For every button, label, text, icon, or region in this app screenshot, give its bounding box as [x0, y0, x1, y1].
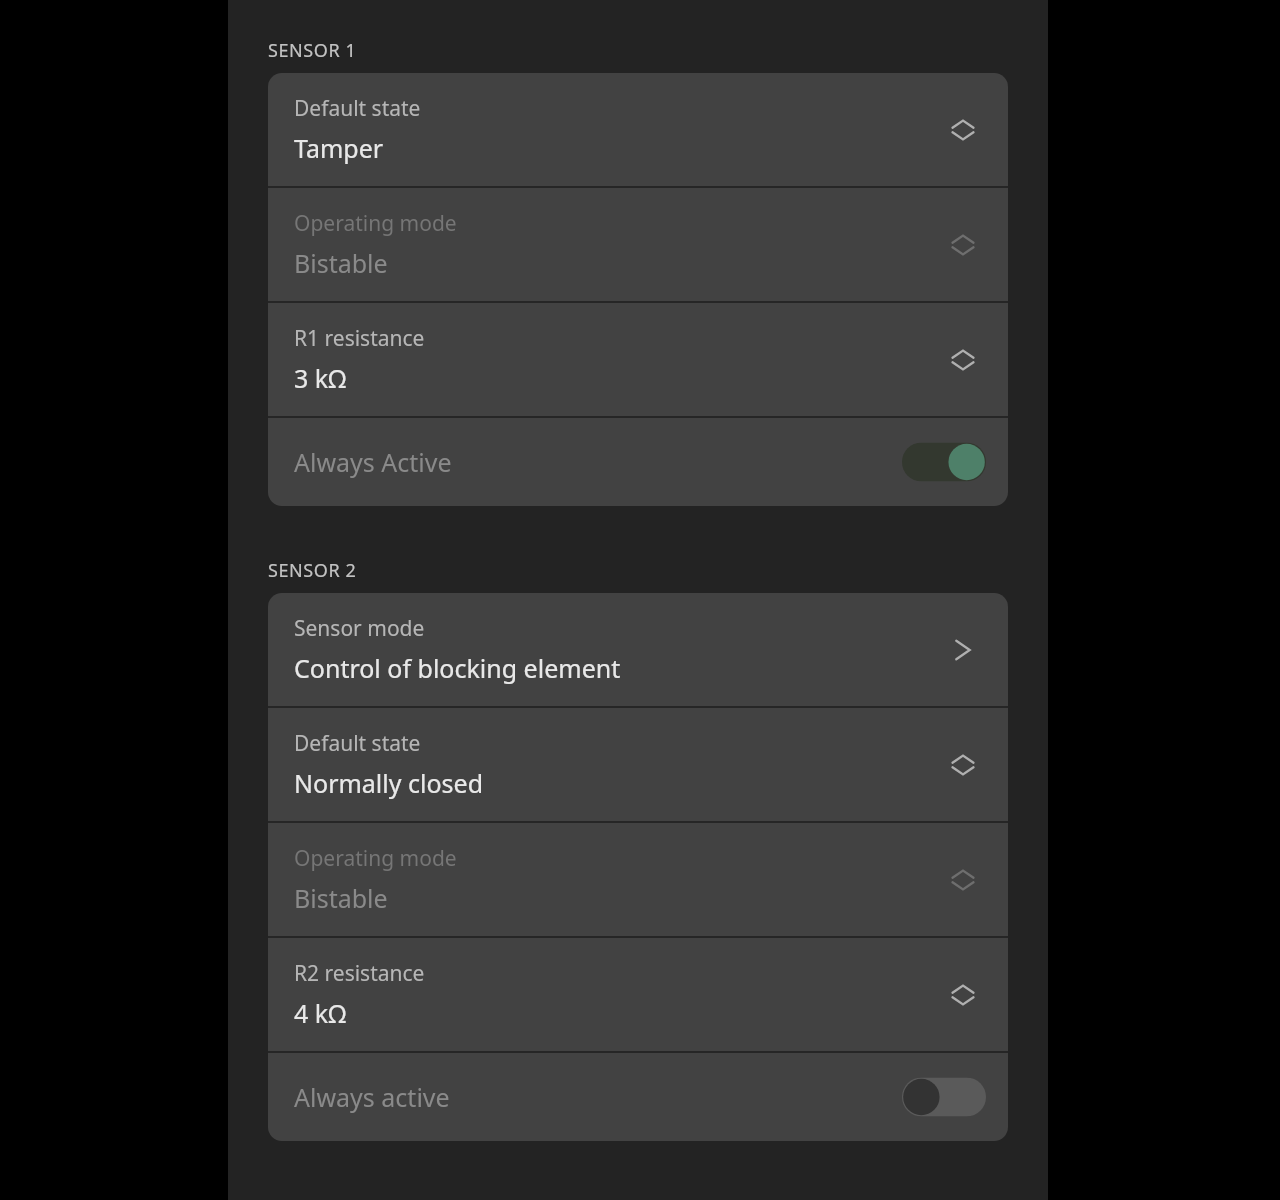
other: Off [902, 1075, 986, 1119]
staticText: Default state [294, 729, 421, 758]
button[interactable]: Default state [268, 73, 1008, 186]
button[interactable]: R1 resistance [268, 303, 1008, 416]
other: Change value [942, 109, 984, 151]
staticText: Default state [294, 94, 421, 123]
other: On [902, 440, 986, 484]
other: Change value [942, 224, 984, 266]
staticText: Sensor mode [294, 614, 425, 643]
other: Change value [942, 974, 984, 1016]
staticText: Normally closed [294, 766, 484, 800]
staticText: 4 kΩ [294, 996, 347, 1030]
staticText: 3 kΩ [294, 361, 347, 395]
staticText: Tamper [294, 131, 384, 165]
button[interactable]: R2 resistance [268, 938, 1008, 1051]
staticText: SENSOR 2 [268, 558, 357, 583]
staticText: Bistable [294, 881, 388, 915]
other: Open sensor mode [942, 629, 984, 671]
button[interactable]: Operating mode [268, 823, 1008, 936]
button[interactable]: Operating mode [268, 188, 1008, 301]
staticText: R1 resistance [294, 324, 425, 353]
staticText: Always Active [294, 445, 890, 479]
staticText: R2 resistance [294, 959, 425, 988]
other: Change value [942, 859, 984, 901]
other: Change value [942, 339, 984, 381]
button[interactable]: Always active [268, 1053, 1008, 1141]
button[interactable]: Default state [268, 708, 1008, 821]
staticText: Always active [294, 1080, 890, 1114]
button[interactable]: Sensor mode [268, 593, 1008, 706]
button[interactable]: Always Active [268, 418, 1008, 506]
staticText: Bistable [294, 246, 388, 280]
other: Change value [942, 744, 984, 786]
staticText: Operating mode [294, 209, 457, 238]
staticText: SENSOR 1 [268, 38, 357, 63]
staticText: Control of blocking element [294, 651, 621, 685]
staticText: Operating mode [294, 844, 457, 873]
